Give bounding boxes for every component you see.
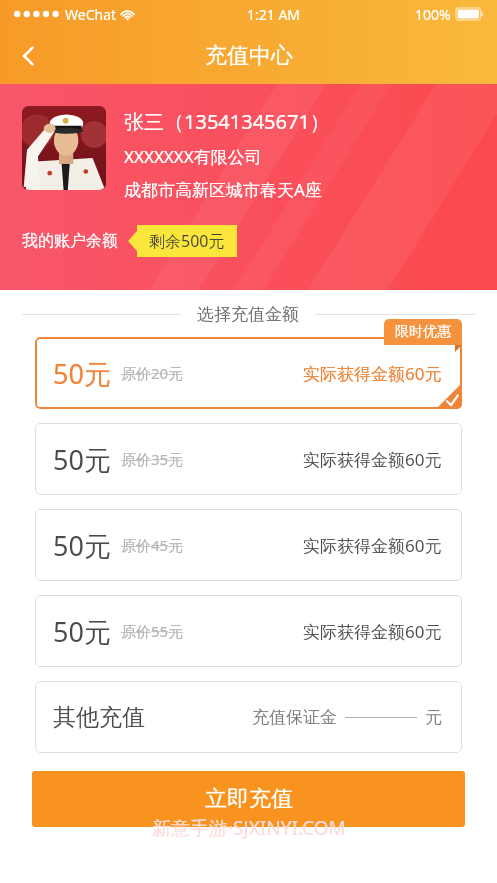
staticText: 立即充值 <box>205 785 293 813</box>
staticText: 50元 <box>53 441 111 478</box>
staticText: 张三（13541345671） <box>124 108 330 135</box>
button[interactable]: 50元 <box>35 423 462 495</box>
staticText: WeChat <box>65 5 117 24</box>
staticText: 原价55元 <box>121 621 184 641</box>
staticText: 充值中心 <box>205 42 293 70</box>
staticText: 实际获得金额60元 <box>303 448 442 471</box>
staticText: 原价35元 <box>121 449 184 469</box>
staticText: 我的账户余额 <box>22 231 118 251</box>
staticText: 100% <box>415 5 451 24</box>
button[interactable]: 其他充值 <box>35 681 462 753</box>
staticText: 选择充值金额 <box>197 304 299 325</box>
staticText: 成都市高新区城市春天A座 <box>124 178 322 201</box>
staticText: 原价45元 <box>121 535 184 555</box>
staticText: 1:21 AM <box>247 5 301 24</box>
staticText: 充值保证金 <box>252 707 337 728</box>
staticText: 50元 <box>53 527 111 564</box>
staticText: 元 <box>425 707 442 728</box>
button[interactable]: Back <box>6 33 52 79</box>
staticText: 剩余500元 <box>149 230 225 252</box>
staticText: 实际获得金额60元 <box>303 534 442 557</box>
staticText: 限时优惠 <box>395 323 451 341</box>
staticText: XXXXXXX有限公司 <box>124 145 262 168</box>
button[interactable]: 立即充值 <box>32 771 465 827</box>
staticText: 50元 <box>53 355 111 392</box>
button[interactable]: 50元 <box>35 337 462 409</box>
button[interactable]: 50元 <box>35 509 462 581</box>
staticText: 其他充值 <box>53 703 145 732</box>
staticText: 实际获得金额60元 <box>303 620 442 643</box>
staticText: 原价20元 <box>121 363 184 383</box>
staticText: 新意手游·SJXINYI.COM <box>152 815 346 841</box>
staticText: 实际获得金额60元 <box>303 362 442 385</box>
staticText: 50元 <box>53 613 111 650</box>
button[interactable]: 50元 <box>35 595 462 667</box>
